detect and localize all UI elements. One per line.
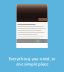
staticText: one simple place <box>16 61 48 67</box>
staticText: Everything you need, in <box>8 56 55 61</box>
button[interactable]: Accept <box>36 39 39 42</box>
